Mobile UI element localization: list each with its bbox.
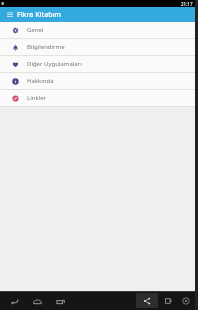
staticText: Linkler <box>27 94 47 102</box>
button[interactable]: Diğer Uygulamaları <box>0 56 198 72</box>
button[interactable]: Linkler <box>0 90 198 106</box>
button[interactable]: Copy <box>161 294 175 308</box>
button[interactable]: Recent apps <box>53 294 67 308</box>
button[interactable]: Open navigation drawer <box>4 9 15 20</box>
button[interactable]: Back <box>7 294 21 308</box>
staticText: Fikra Kitabım <box>17 10 62 20</box>
staticText: Bilgilendirme <box>27 43 65 51</box>
button[interactable]: Bilgilendirme <box>0 39 198 55</box>
button[interactable]: Share <box>136 293 158 308</box>
staticText: Diğer Uygulamaları <box>27 60 82 68</box>
button[interactable]: Hakkında <box>0 73 198 89</box>
button[interactable]: Home <box>30 294 44 308</box>
staticText: Genel <box>27 26 44 34</box>
button[interactable]: Close <box>179 294 193 308</box>
staticText: 21:17 <box>181 1 193 7</box>
staticText: Hakkında <box>27 77 54 85</box>
button[interactable]: Genel <box>0 22 198 38</box>
